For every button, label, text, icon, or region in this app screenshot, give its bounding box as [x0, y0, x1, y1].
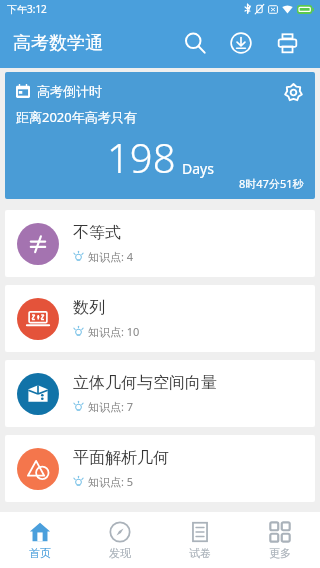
button[interactable]: Print: [264, 20, 310, 66]
staticText: 知识点: 10: [88, 324, 140, 339]
button[interactable]: 试卷: [160, 512, 240, 568]
staticText: 平面解析几何: [73, 448, 169, 468]
staticText: Days: [182, 159, 214, 178]
button[interactable]: 首页: [0, 512, 80, 568]
staticText: 下午3:12: [7, 2, 47, 16]
button[interactable]: 更多: [240, 512, 320, 568]
staticText: 8时47分51秒: [239, 176, 304, 191]
staticText: 知识点: 7: [88, 399, 134, 414]
staticText: 不等式: [73, 223, 121, 243]
staticText: 距离2020年高考只有: [16, 108, 137, 126]
button[interactable]: 高考倒计时: [5, 72, 315, 199]
staticText: 高考数学通: [13, 32, 103, 55]
button[interactable]: 数列: [5, 285, 315, 352]
staticText: 更多: [269, 546, 291, 560]
button[interactable]: 平面解析几何: [5, 435, 315, 502]
button[interactable]: 发现: [80, 512, 160, 568]
button[interactable]: 不等式: [5, 210, 315, 277]
staticText: 首页: [29, 546, 51, 560]
staticText: 立体几何与空间向量: [73, 373, 217, 393]
staticText: 高考倒计时: [37, 83, 102, 99]
staticText: 知识点: 4: [88, 249, 134, 264]
staticText: 198: [107, 130, 176, 184]
staticText: 知识点: 5: [88, 474, 134, 489]
button[interactable]: Download: [218, 20, 264, 66]
button[interactable]: Settings: [280, 79, 306, 105]
button[interactable]: 立体几何与空间向量: [5, 360, 315, 427]
button[interactable]: Search: [172, 20, 218, 66]
staticText: 数列: [73, 298, 105, 318]
staticText: 发现: [109, 546, 131, 560]
staticText: 试卷: [189, 546, 211, 560]
